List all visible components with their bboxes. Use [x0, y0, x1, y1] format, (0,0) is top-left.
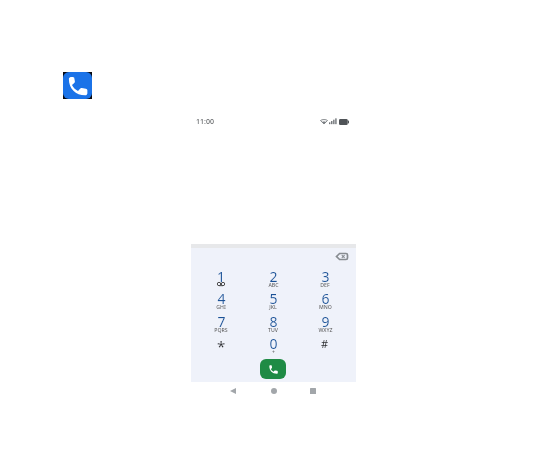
button[interactable]: Recent apps: [306, 384, 319, 397]
button[interactable]: Home: [267, 384, 280, 397]
button[interactable]: 5: [247, 289, 299, 312]
button[interactable]: 2: [247, 267, 299, 290]
staticText: 4: [217, 289, 226, 308]
button[interactable]: 9: [299, 312, 351, 335]
staticText: 1: [217, 267, 226, 286]
button[interactable]: 6: [299, 289, 351, 312]
staticText: *: [217, 336, 226, 356]
staticText: +: [272, 348, 275, 355]
staticText: #: [321, 336, 329, 351]
staticText: GHI: [216, 303, 226, 310]
button[interactable]: #: [299, 334, 351, 357]
staticText: 8: [269, 312, 278, 331]
staticText: WXYZ: [318, 326, 333, 333]
button[interactable]: Back: [226, 384, 239, 397]
button[interactable]: Phone: [63, 72, 92, 99]
staticText: 9: [321, 312, 330, 331]
button[interactable]: 1: [195, 267, 247, 290]
staticText: 2: [269, 267, 278, 286]
staticText: ABC: [268, 281, 279, 288]
staticText: MNO: [319, 303, 332, 310]
staticText: 3: [321, 267, 330, 286]
button[interactable]: 7: [195, 312, 247, 335]
button[interactable]: *: [195, 334, 247, 357]
button[interactable]: 8: [247, 312, 299, 335]
staticText: 6: [321, 289, 330, 308]
button[interactable]: 4: [195, 289, 247, 312]
staticText: TUV: [268, 326, 278, 333]
button[interactable]: Call: [260, 359, 286, 379]
button[interactable]: Backspace: [335, 249, 349, 263]
staticText: PQRS: [214, 326, 228, 333]
staticText: 11:00: [196, 117, 214, 127]
button[interactable]: 3: [299, 267, 351, 290]
button[interactable]: 0: [247, 334, 299, 357]
staticText: 0: [269, 334, 278, 353]
staticText: 7: [217, 312, 226, 331]
staticText: JKL: [269, 303, 277, 310]
staticText: 5: [269, 289, 278, 308]
staticText: DEF: [320, 281, 330, 288]
